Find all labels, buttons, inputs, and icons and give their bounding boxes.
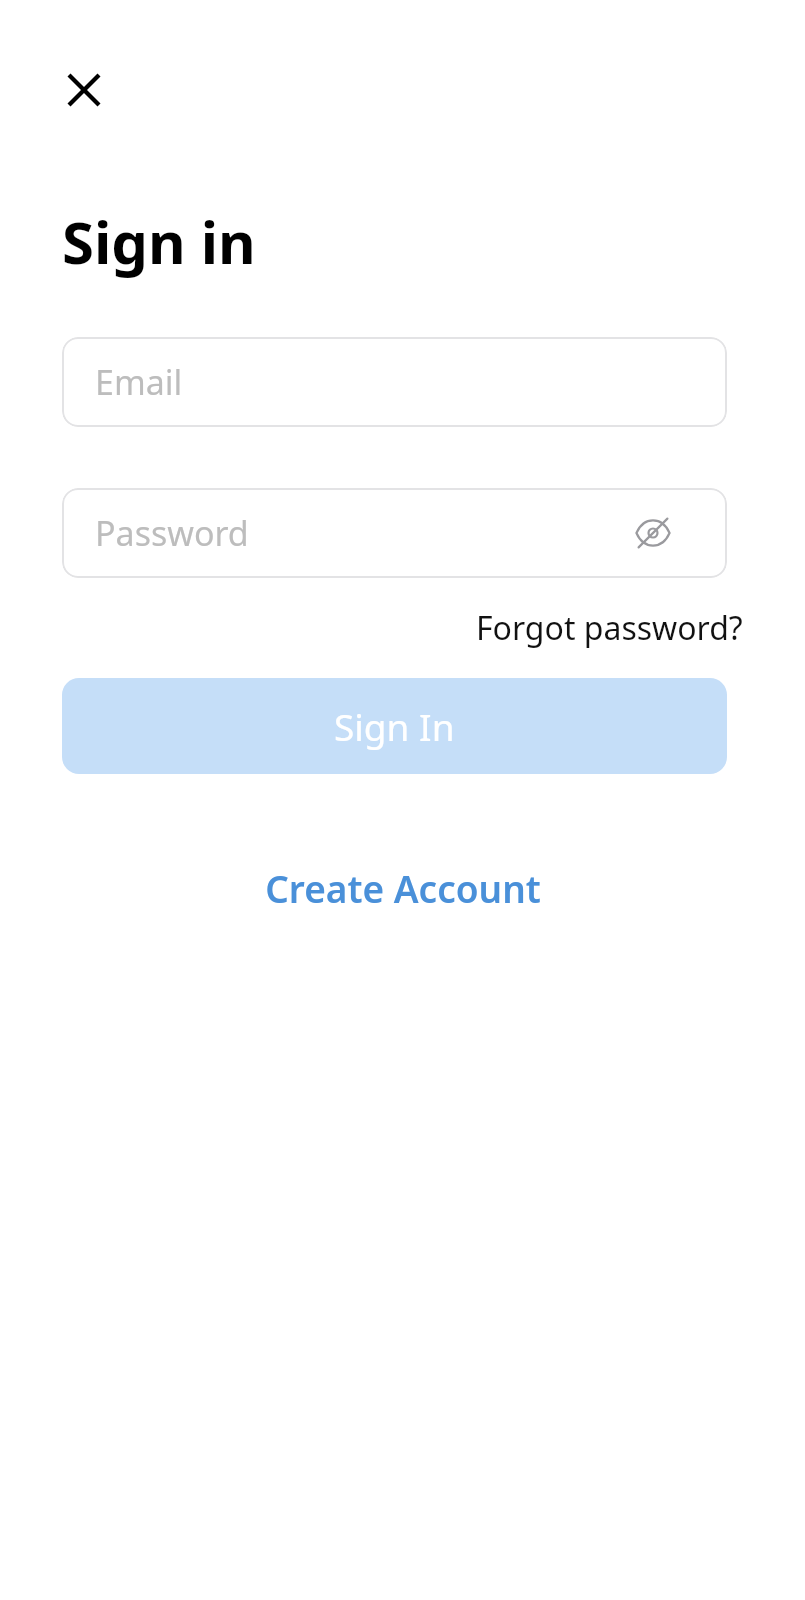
button[interactable]: Close <box>50 56 118 124</box>
button[interactable]: Password input <box>62 488 727 578</box>
staticText: Password <box>95 510 249 556</box>
button[interactable]: Sign In <box>62 678 727 774</box>
staticText: Forgot password? <box>476 606 743 650</box>
button[interactable]: Show password <box>631 511 675 555</box>
button[interactable]: Create Account <box>265 863 541 913</box>
button[interactable]: Email input <box>62 337 727 427</box>
staticText: Sign In <box>334 701 455 751</box>
staticText: Sign in <box>62 202 256 281</box>
staticText: Create Account <box>265 863 541 913</box>
staticText: Email <box>95 359 183 405</box>
button[interactable]: Forgot password? <box>476 606 743 650</box>
